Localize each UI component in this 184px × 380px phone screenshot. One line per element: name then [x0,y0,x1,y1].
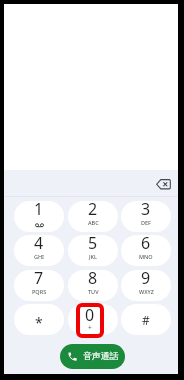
staticText: 9 [141,270,151,289]
staticText: 6 [141,235,151,254]
staticText: 3 [141,201,151,220]
staticText: 7 [34,270,44,289]
button[interactable]: 9 [121,270,171,301]
button[interactable] [151,174,176,194]
staticText: 2 [88,201,98,220]
button[interactable]: 8 [68,270,118,301]
button[interactable]: 5 [68,235,118,266]
button[interactable]: 音声通話 [60,344,125,369]
button[interactable]: 4 [14,235,64,266]
staticText: PQRS [32,288,47,295]
staticText: # [142,312,150,328]
button[interactable]: 6 [121,235,171,266]
staticText: 0 [85,304,95,326]
staticText: ABC [88,219,99,226]
button[interactable] [68,304,118,335]
button[interactable]: * [14,304,64,335]
staticText: MNO [139,253,153,260]
staticText: 音声通話 [83,351,119,362]
staticText: 8 [88,270,98,289]
staticText: 4 [34,235,44,254]
staticText: WXYZ [139,288,154,295]
staticText: DEF [141,219,151,226]
staticText: TUV [88,288,99,295]
staticText: 5 [88,235,98,254]
staticText: + [88,323,92,332]
staticText: 1 [34,201,44,220]
button[interactable]: # [121,304,171,335]
button[interactable]: 3 [121,201,171,232]
staticText: JKL [89,253,98,260]
button[interactable]: 7 [14,270,64,301]
button[interactable]: 0 [76,303,104,338]
staticText: * [35,313,43,332]
button[interactable]: 1 [14,201,64,232]
staticText: GHI [34,253,45,260]
button[interactable]: 2 [68,201,118,232]
